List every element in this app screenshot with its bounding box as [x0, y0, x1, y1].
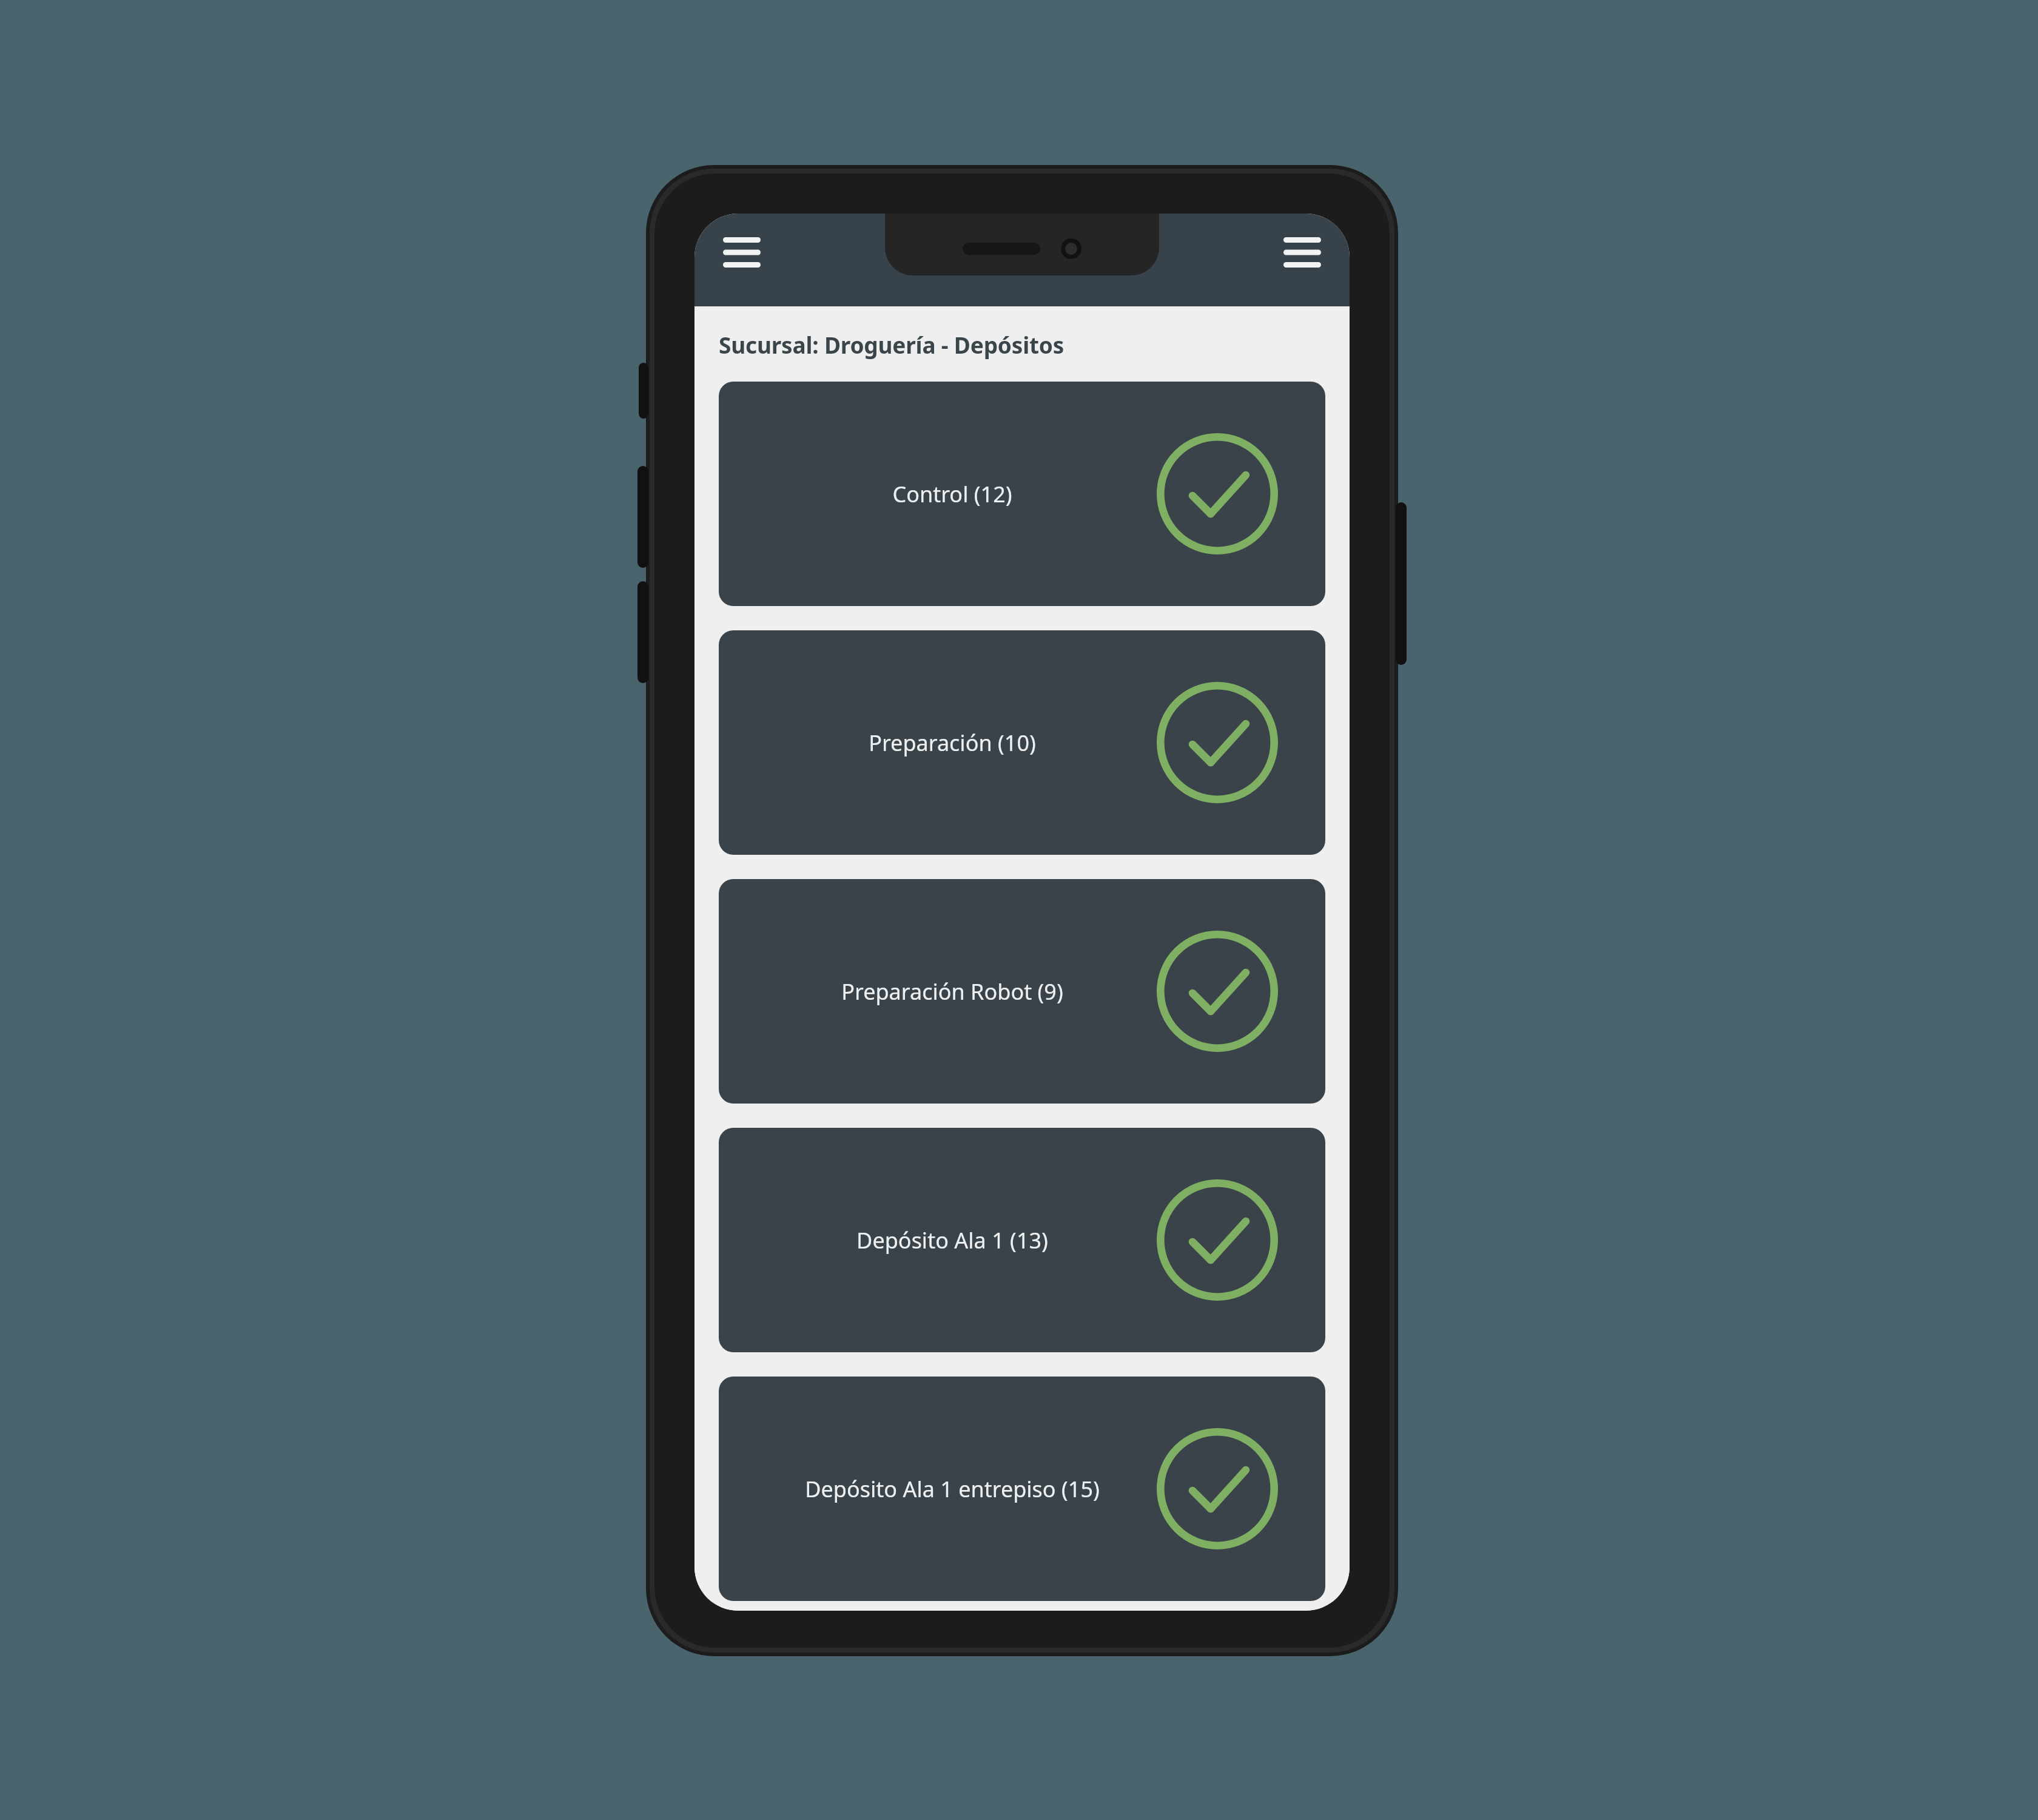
button[interactable]: Depósito Ala 1 (13) — [719, 1128, 1325, 1352]
button[interactable]: Open options menu — [1270, 222, 1335, 283]
button[interactable]: Depósito Ala 1 entrepiso (15) — [719, 1377, 1325, 1601]
button[interactable]: Preparación (10) — [719, 630, 1325, 855]
staticText: Depósito Ala 1 (13) — [856, 1225, 1048, 1255]
button[interactable]: Preparación Robot (9) — [719, 879, 1325, 1104]
staticText: Preparación (10) — [869, 728, 1036, 758]
staticText: Depósito Ala 1 entrepiso (15) — [805, 1474, 1100, 1504]
button[interactable]: Control (12) — [719, 382, 1325, 606]
staticText: Sucursal: Droguería - Depósitos — [719, 329, 1064, 360]
button[interactable]: Open navigation menu — [709, 222, 775, 283]
staticText: Control (12) — [892, 479, 1012, 509]
staticText: Preparación Robot (9) — [841, 977, 1063, 1006]
